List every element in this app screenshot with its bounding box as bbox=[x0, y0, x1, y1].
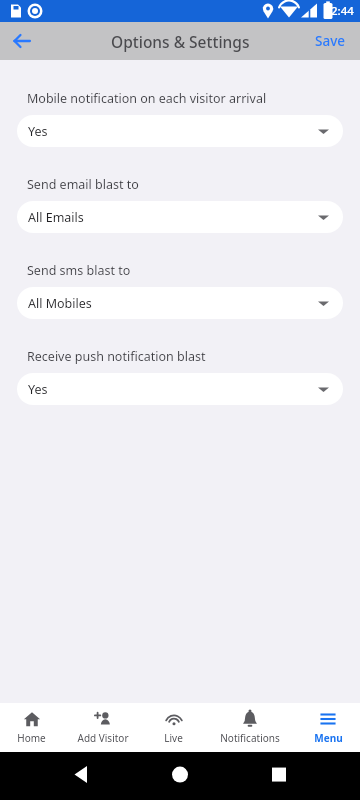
staticText: Menu bbox=[314, 731, 343, 745]
button[interactable]: Yes bbox=[17, 373, 343, 405]
staticText: Receive push notification blast bbox=[27, 348, 206, 365]
button[interactable]: Back bbox=[0, 22, 44, 60]
button[interactable]: Notifications bbox=[204, 703, 296, 752]
button[interactable]: Add Visitor bbox=[63, 703, 143, 752]
staticText: Send sms blast to bbox=[27, 262, 131, 279]
button[interactable]: Live bbox=[143, 703, 204, 752]
staticText: Add Visitor bbox=[77, 731, 129, 745]
staticText: Yes bbox=[28, 381, 318, 398]
staticText: Notifications bbox=[220, 731, 280, 745]
staticText: 2:44 bbox=[331, 3, 354, 19]
staticText: All Mobiles bbox=[28, 295, 318, 312]
staticText: Options & Settings bbox=[111, 31, 250, 52]
staticText: Send email blast to bbox=[27, 176, 139, 193]
staticText: Home bbox=[17, 731, 46, 745]
staticText: Live bbox=[164, 731, 183, 745]
button[interactable]: All Mobiles bbox=[17, 287, 343, 319]
staticText: Save bbox=[315, 32, 346, 50]
staticText: Yes bbox=[28, 123, 318, 140]
button[interactable]: Home bbox=[0, 703, 63, 752]
staticText: All Emails bbox=[28, 209, 318, 226]
button[interactable]: All Emails bbox=[17, 201, 343, 233]
button[interactable]: Save bbox=[301, 22, 360, 60]
staticText: Mobile notification on each visitor arri… bbox=[27, 90, 267, 107]
button[interactable]: Menu bbox=[296, 703, 360, 752]
button[interactable]: Yes bbox=[17, 115, 343, 147]
